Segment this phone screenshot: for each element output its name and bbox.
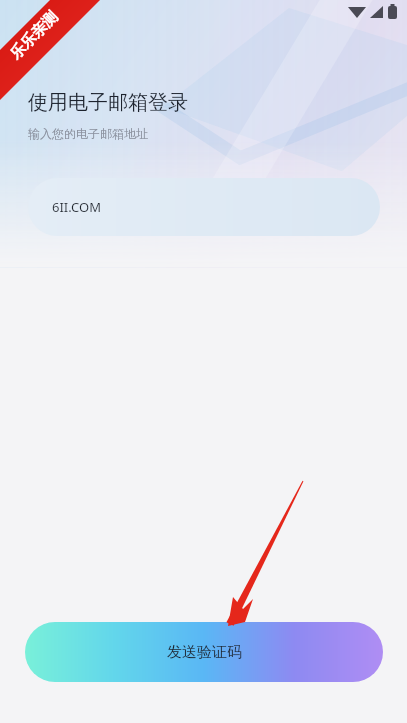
staticText: 使用电子邮箱登录 xyxy=(28,90,188,115)
staticText: 输入您的电子邮箱地址 xyxy=(28,126,148,141)
other: 乐乐亲测 xyxy=(6,8,62,63)
button[interactable]: 6II.COM xyxy=(28,178,380,236)
staticText: 发送验证码 xyxy=(167,643,242,662)
staticText: 乐乐亲测 xyxy=(6,8,62,63)
staticText: 6II.COM xyxy=(52,198,101,216)
button[interactable]: 发送验证码 xyxy=(25,622,383,682)
